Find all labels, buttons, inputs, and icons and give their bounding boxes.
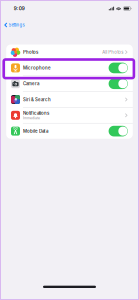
staticText: Siri & Search	[23, 97, 51, 102]
button[interactable]: Settings	[0, 17, 27, 33]
button[interactable]: Mobile Data	[6, 123, 133, 139]
button[interactable]: Notifications	[6, 108, 133, 123]
button[interactable]: Microphone	[6, 60, 133, 75]
staticText: Photos	[23, 49, 38, 55]
staticText: Microphone	[23, 65, 51, 71]
staticText: Immediate	[23, 116, 40, 120]
staticText: All Photos	[102, 49, 123, 55]
button[interactable]: Siri & Search	[6, 92, 133, 107]
staticText: Camera	[23, 81, 39, 86]
staticText: Mobile Data	[23, 128, 48, 134]
button[interactable]: Camera	[6, 76, 133, 91]
staticText: Settings	[8, 22, 24, 28]
button[interactable]: Photos	[6, 44, 133, 60]
staticText: 9:09	[14, 6, 25, 11]
staticText: Notifications	[23, 110, 49, 116]
